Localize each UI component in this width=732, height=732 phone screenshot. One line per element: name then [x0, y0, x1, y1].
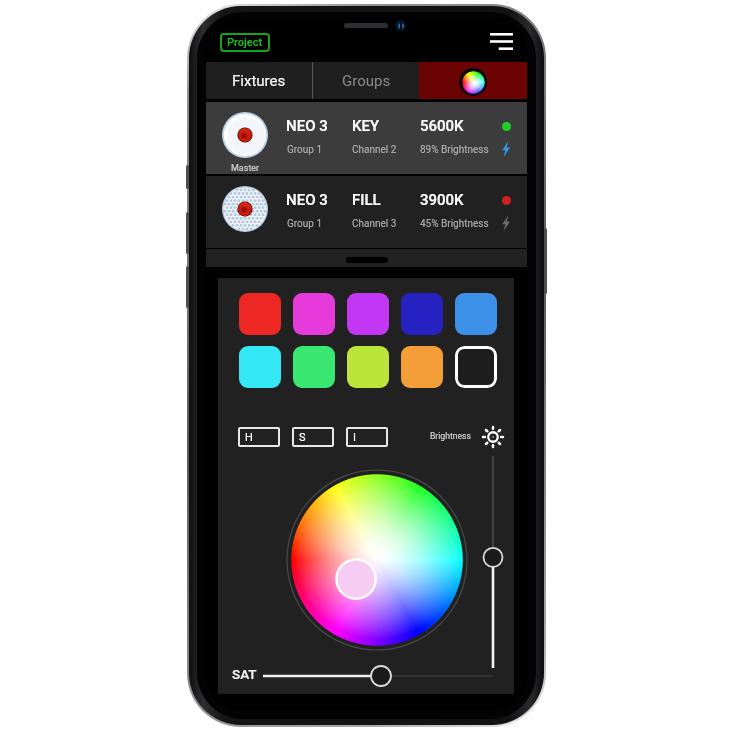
staticText: KEY	[352, 117, 380, 135]
button[interactable]: Groups	[313, 62, 419, 99]
staticText: 5600K	[420, 117, 464, 135]
staticText: Fixtures	[232, 72, 286, 90]
button[interactable]: Colour preset	[347, 293, 389, 335]
staticText: 45% Brightness	[420, 218, 489, 230]
staticText: 89% Brightness	[420, 144, 489, 156]
staticText: NEO 3	[286, 191, 328, 209]
button[interactable]: Colour preset	[455, 293, 497, 335]
button[interactable]: Colour picker	[419, 62, 527, 99]
button[interactable]: Fixtures	[206, 62, 312, 99]
staticText: Group 1	[287, 218, 323, 230]
staticText: NEO 3	[286, 117, 328, 135]
staticText: H	[245, 431, 253, 444]
staticText: Brightness	[430, 431, 471, 441]
button[interactable]: Colour preset	[347, 346, 389, 388]
staticText: Group 1	[287, 144, 323, 156]
button[interactable]: H	[238, 427, 280, 447]
staticText: FILL	[352, 191, 381, 209]
button[interactable]: Colour preset	[239, 346, 281, 388]
button[interactable]: Master	[206, 102, 527, 174]
other: Brightness	[481, 425, 505, 449]
button[interactable]: Colour preset	[239, 293, 281, 335]
button[interactable]: Colour preset	[401, 346, 443, 388]
button[interactable]: Project	[220, 33, 270, 52]
button[interactable]: Menu	[487, 29, 515, 53]
button[interactable]: NEO 3	[206, 176, 527, 248]
button[interactable]: Custom colour	[455, 346, 497, 388]
staticText: SAT	[232, 666, 257, 682]
staticText: Channel 3	[352, 218, 397, 230]
button[interactable]: Colour preset	[293, 293, 335, 335]
staticText: Channel 2	[352, 144, 397, 156]
button[interactable]: Colour preset	[293, 346, 335, 388]
staticText: S	[299, 431, 306, 444]
staticText: 3900K	[420, 191, 464, 209]
button[interactable]: Colour preset	[401, 293, 443, 335]
button[interactable]: S	[292, 427, 334, 447]
staticText: I	[353, 431, 356, 444]
button[interactable]: I	[346, 427, 388, 447]
staticText: Project	[227, 36, 263, 49]
staticText: Groups	[342, 72, 391, 90]
staticText: Master	[231, 163, 260, 174]
